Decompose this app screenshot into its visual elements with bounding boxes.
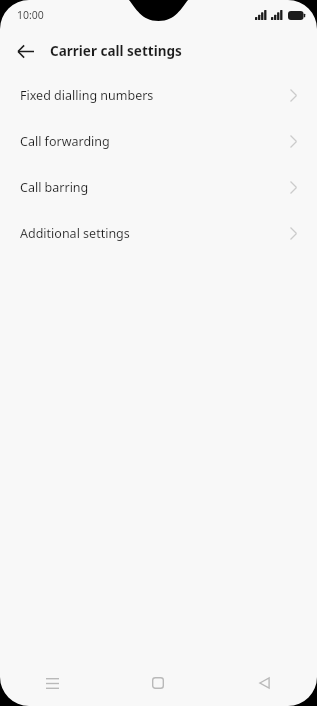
staticText: Additional settings xyxy=(20,225,130,242)
button[interactable]: Fixed dialling numbers xyxy=(0,72,317,118)
button[interactable]: Home xyxy=(105,660,211,706)
button[interactable]: Call forwarding xyxy=(0,118,317,164)
staticText: Carrier call settings xyxy=(50,42,182,60)
button[interactable]: Back xyxy=(211,660,317,706)
button[interactable]: Recent apps xyxy=(0,660,105,706)
button[interactable]: Back xyxy=(10,36,40,66)
staticText: Call forwarding xyxy=(20,133,110,150)
button[interactable]: Additional settings xyxy=(0,210,317,256)
staticText: Fixed dialling numbers xyxy=(20,87,154,104)
staticText: 10:00 xyxy=(17,8,44,22)
staticText: Call barring xyxy=(20,179,89,196)
button[interactable]: Call barring xyxy=(0,164,317,210)
